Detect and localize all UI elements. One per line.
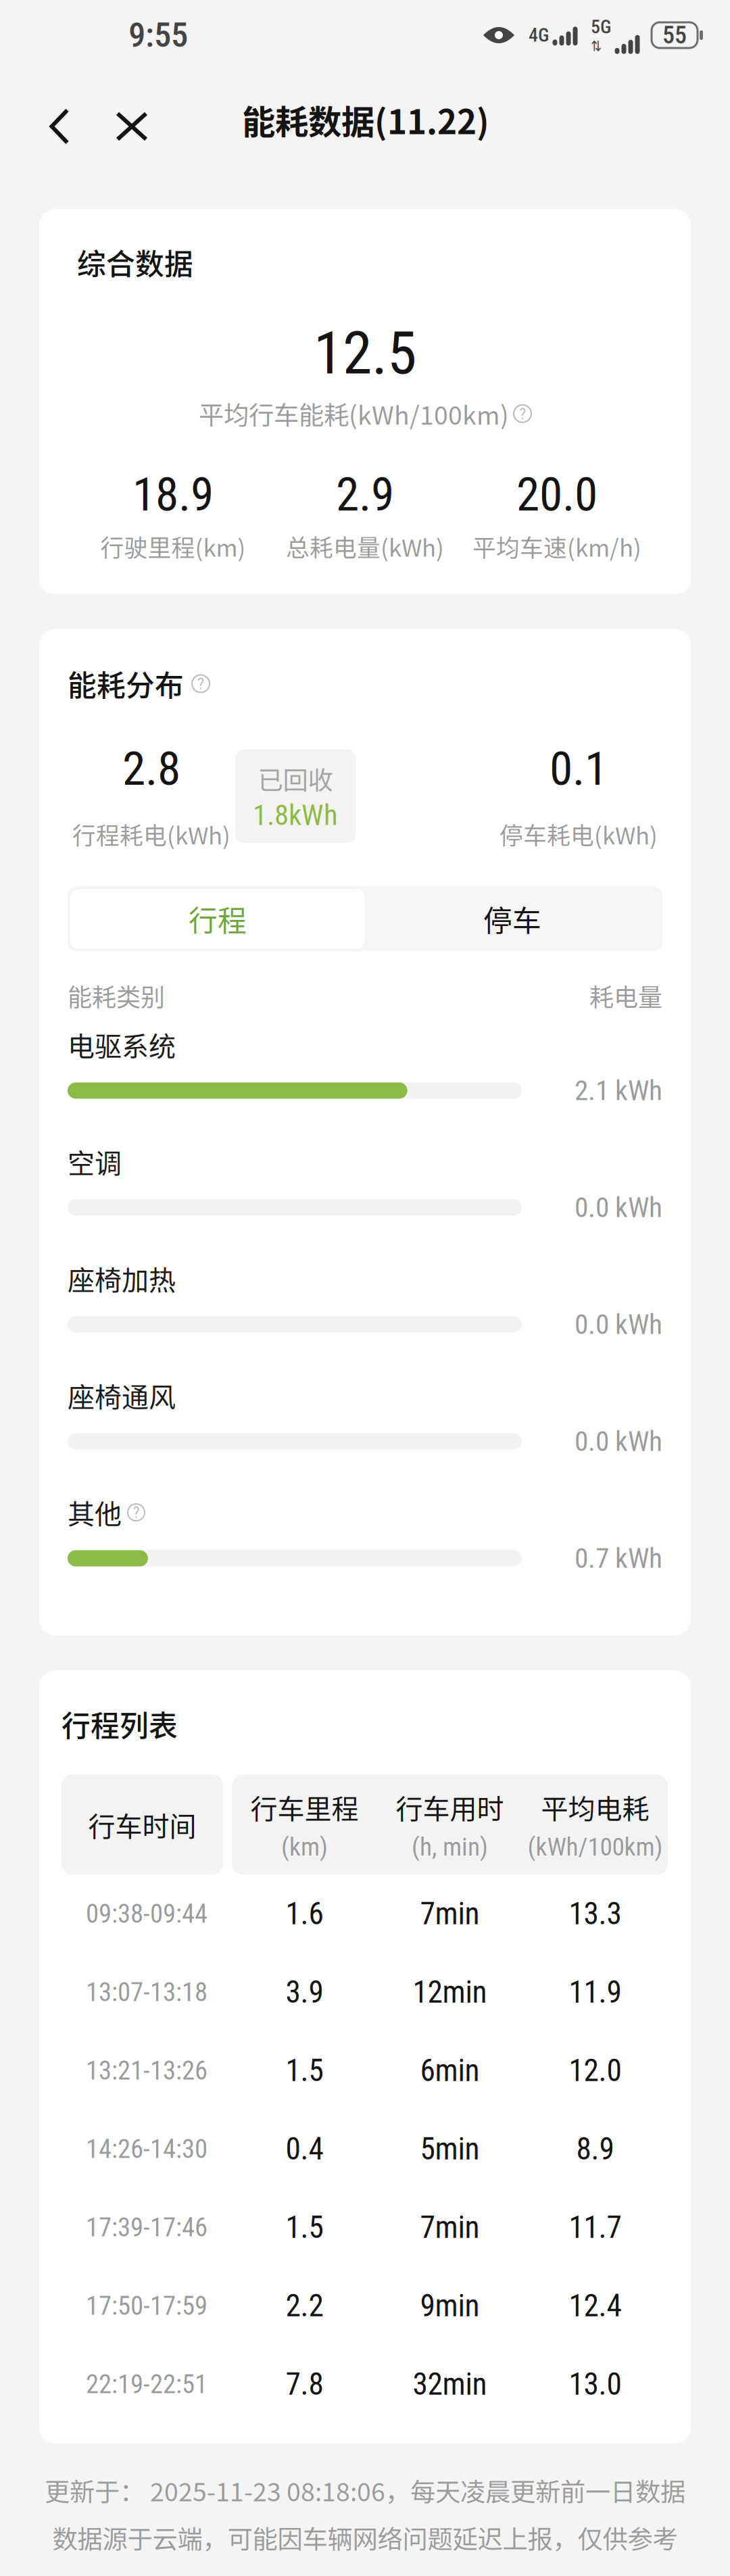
button[interactable]: Close [111, 79, 153, 160]
staticText: 12min [413, 1974, 487, 2010]
staticText: 5G [591, 16, 611, 38]
staticText: 20.0 [516, 467, 598, 522]
staticText: 8.9 [576, 2131, 614, 2167]
staticText: 总耗电量(kWh) [286, 529, 444, 563]
staticText: 2.1 kWh [575, 1074, 662, 1107]
staticText: 1.8kWh [253, 798, 338, 832]
staticText: 55 [662, 21, 687, 49]
staticText: ⇅ [591, 38, 602, 55]
staticText: 0.1 [550, 741, 608, 796]
staticText: 0.7 kWh [575, 1542, 662, 1575]
staticText: 7min [420, 2209, 480, 2245]
staticText: 座椅通风 [68, 1376, 176, 1415]
staticText: 1.5 [286, 2053, 323, 2088]
staticText: 7min [420, 1896, 480, 1932]
staticText: 已回收 [258, 760, 333, 797]
staticText: 3.9 [286, 1974, 323, 2010]
staticText: 综合数据 [77, 241, 193, 283]
staticText: 7.8 [286, 2366, 323, 2402]
staticText: 平均行车能耗(kWh/100km) [199, 395, 509, 432]
staticText: 1.5 [286, 2209, 323, 2245]
staticText: 数据源于云端，可能因车辆网络问题延迟上报，仅供参考 [52, 2519, 678, 2556]
staticText: 22:19-22:51 [86, 2369, 208, 2399]
button[interactable]: 行程 [70, 889, 365, 949]
staticText: 行程耗电(kWh) [72, 817, 230, 851]
staticText: 行车里程 [250, 1787, 359, 1827]
staticText: (kWh/100km) [528, 1832, 663, 1862]
staticText: 9:55 [128, 15, 188, 55]
staticText: 13:21-13:26 [86, 2055, 208, 2086]
staticText: 停车 [483, 898, 541, 940]
staticText: ? [197, 674, 204, 693]
staticText: 0.0 kWh [575, 1425, 662, 1458]
staticText: 行车时间 [88, 1805, 196, 1844]
staticText: 18.9 [132, 467, 214, 522]
staticText: 0.4 [286, 2131, 323, 2167]
staticText: 11.7 [569, 2209, 622, 2245]
staticText: 0.0 kWh [575, 1191, 662, 1224]
staticText: 2.8 [122, 741, 180, 796]
staticText: 13:07-13:18 [86, 1977, 208, 2007]
staticText: 32min [413, 2366, 487, 2402]
staticText: 平均电耗 [541, 1787, 649, 1827]
staticText: 2.2 [286, 2288, 323, 2324]
button[interactable]: 停车 [365, 889, 660, 949]
staticText: 能耗分布 [68, 663, 184, 705]
staticText: 耗电量 [589, 978, 662, 1014]
staticText: 17:50-17:59 [86, 2290, 208, 2321]
staticText: 6min [420, 2053, 480, 2088]
staticText: 11.9 [569, 1974, 622, 2010]
staticText: 4G [529, 24, 549, 46]
staticText: 电驱系统 [68, 1025, 176, 1064]
staticText: 13.3 [569, 1896, 622, 1932]
staticText: 13.0 [569, 2366, 622, 2402]
staticText: 12.0 [569, 2053, 622, 2088]
staticText: 行驶里程(km) [100, 529, 246, 563]
staticText: 9min [420, 2288, 480, 2324]
staticText: 行程列表 [62, 1703, 178, 1745]
staticText: ? [519, 404, 526, 423]
staticText: 09:38-09:44 [86, 1898, 208, 1929]
staticText: 17:39-17:46 [86, 2212, 208, 2243]
staticText: 2.9 [336, 467, 394, 522]
staticText: 行车用时 [396, 1787, 504, 1827]
staticText: 能耗数据(11.22) [242, 96, 489, 144]
staticText: ? [133, 1503, 140, 1522]
staticText: 平均车速(km/h) [472, 529, 641, 563]
staticText: 更新于： 2025-11-23 08:18:06，每天凌晨更新前一日数据 [45, 2472, 685, 2509]
staticText: 停车耗电(kWh) [500, 817, 658, 851]
button[interactable]: Back [39, 79, 80, 160]
staticText: 5min [420, 2131, 480, 2167]
staticText: 12.5 [314, 318, 416, 388]
staticText: 座椅加热 [68, 1259, 176, 1298]
staticText: 空调 [68, 1142, 122, 1181]
staticText: 12.4 [569, 2288, 622, 2324]
staticText: (km) [281, 1832, 328, 1862]
staticText: 其他 [68, 1493, 122, 1532]
staticText: 1.6 [286, 1896, 323, 1932]
staticText: 能耗类别 [68, 978, 165, 1014]
staticText: 0.0 kWh [575, 1308, 662, 1341]
staticText: 行程 [189, 898, 247, 940]
staticText: (h, min) [412, 1832, 488, 1862]
staticText: 14:26-14:30 [86, 2134, 208, 2164]
